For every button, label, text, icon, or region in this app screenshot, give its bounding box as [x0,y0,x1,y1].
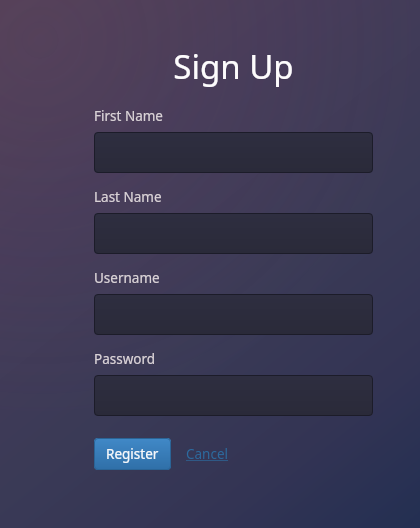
staticText: Last Name [94,188,162,206]
button[interactable] [94,132,373,173]
button[interactable]: Cancel [186,438,229,470]
staticText: First Name [94,107,163,125]
button[interactable] [94,213,373,254]
button[interactable] [94,375,373,416]
staticText: Cancel [186,445,229,463]
staticText: Password [94,350,156,368]
button[interactable]: Register [94,438,171,470]
staticText: Register [106,445,159,463]
staticText: Username [94,269,160,287]
staticText: Sign Up [94,44,373,89]
button[interactable] [94,294,373,335]
